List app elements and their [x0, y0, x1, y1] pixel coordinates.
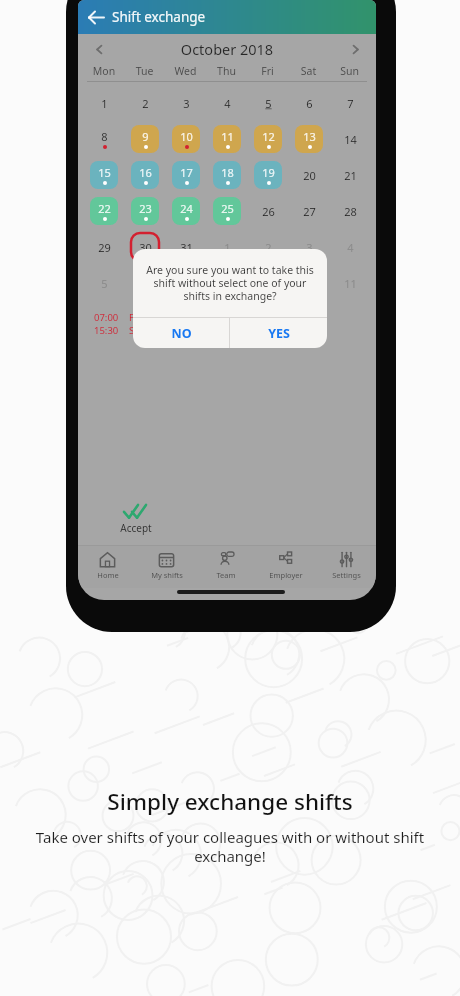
staticText: 6	[306, 96, 313, 111]
staticText: 20	[303, 168, 316, 183]
button[interactable]: 28	[329, 193, 370, 229]
staticText: 29	[98, 240, 111, 255]
staticText: 14	[344, 132, 357, 147]
staticText: 27	[303, 204, 316, 219]
staticText: Employer	[269, 570, 303, 580]
button[interactable]: 11	[206, 121, 247, 157]
staticText: 11	[344, 276, 357, 291]
button[interactable]: 24	[165, 193, 206, 229]
button[interactable]: 22	[84, 193, 124, 229]
staticText: 23	[139, 201, 152, 216]
button[interactable]: Next month	[342, 36, 368, 62]
button[interactable]: 30	[124, 229, 165, 265]
staticText: October 2018	[112, 39, 342, 59]
button[interactable]: 6	[288, 85, 329, 121]
staticText: Sun	[329, 64, 370, 78]
staticText: 2	[142, 96, 149, 111]
staticText: Wed	[165, 64, 206, 78]
button[interactable]: 4	[206, 85, 247, 121]
staticText: 26	[262, 204, 275, 219]
button[interactable]: 13	[288, 121, 329, 157]
button[interactable]: 18	[206, 157, 247, 193]
staticText: 9	[265, 276, 272, 291]
button[interactable]: 3	[165, 85, 206, 121]
button[interactable]: 17	[165, 157, 206, 193]
staticText: Simply exchange shifts	[107, 786, 353, 817]
button[interactable]: 1	[206, 229, 247, 265]
staticText: Tue	[124, 64, 165, 78]
staticText: 10	[303, 276, 316, 291]
button[interactable]: 16	[124, 157, 165, 193]
button[interactable]: YES	[230, 318, 327, 348]
button[interactable]: 12	[247, 121, 288, 157]
staticText: 07:00	[94, 311, 119, 324]
staticText: 4	[224, 96, 231, 111]
button[interactable]: 8	[84, 121, 124, 157]
button[interactable]: 2	[124, 85, 165, 121]
button[interactable]: 15	[84, 157, 124, 193]
staticText: 9	[142, 129, 149, 144]
button[interactable]: 29	[84, 229, 124, 265]
button[interactable]: 7	[165, 265, 206, 301]
button[interactable]: 5	[247, 85, 288, 121]
button[interactable]: 19	[247, 157, 288, 193]
staticText: Fr	[129, 311, 138, 324]
button[interactable]: 10	[288, 265, 329, 301]
button[interactable]: 14	[329, 121, 370, 157]
button[interactable]: 8	[206, 265, 247, 301]
button[interactable]: 3	[288, 229, 329, 265]
button[interactable]: 6	[124, 265, 165, 301]
staticText: My shifts	[151, 570, 183, 580]
button[interactable]: 10	[165, 121, 206, 157]
button[interactable]: Home	[78, 546, 137, 588]
button[interactable]: Team	[196, 546, 256, 588]
staticText: 4	[347, 240, 354, 255]
staticText: 7	[347, 96, 354, 111]
button[interactable]: 9	[124, 121, 165, 157]
staticText: 3	[306, 240, 313, 255]
staticText: 25	[221, 201, 234, 216]
button[interactable]: NO	[133, 318, 229, 348]
button[interactable]: 7	[329, 85, 370, 121]
button[interactable]: 23	[124, 193, 165, 229]
staticText: Settings	[332, 570, 361, 580]
button[interactable]: 21	[329, 157, 370, 193]
staticText: 28	[344, 204, 357, 219]
staticText: Take over shifts of your colleagues with…	[34, 827, 426, 866]
button[interactable]: Back	[78, 0, 112, 34]
button[interactable]: 9	[247, 265, 288, 301]
staticText: 18	[221, 165, 234, 180]
button[interactable]: Accept	[120, 503, 152, 535]
button[interactable]: My shifts	[137, 546, 196, 588]
button[interactable]: 26	[247, 193, 288, 229]
staticText: Shift exchange	[112, 8, 206, 26]
staticText: Thu	[206, 64, 247, 78]
staticText: St	[129, 324, 138, 337]
button[interactable]: Settings	[316, 546, 376, 588]
button[interactable]: 2	[247, 229, 288, 265]
button[interactable]: Employer	[256, 546, 316, 588]
staticText: 1	[101, 96, 108, 111]
staticText: Home	[97, 570, 119, 580]
staticText: 5	[101, 276, 108, 291]
staticText: Sat	[288, 64, 329, 78]
button[interactable]: 25	[206, 193, 247, 229]
staticText: 31	[180, 240, 193, 255]
staticText: NO	[171, 325, 192, 342]
button[interactable]: 1	[84, 85, 124, 121]
staticText: 3	[183, 96, 190, 111]
staticText: 7	[183, 276, 190, 291]
staticText: 24	[180, 201, 193, 216]
button[interactable]: 20	[288, 157, 329, 193]
button[interactable]: 31	[165, 229, 206, 265]
staticText: 2	[265, 240, 272, 255]
button[interactable]: Previous month	[86, 36, 112, 62]
staticText: 19	[262, 165, 275, 180]
staticText: Mon	[84, 64, 124, 78]
staticText: 10	[180, 129, 193, 144]
button[interactable]: 27	[288, 193, 329, 229]
